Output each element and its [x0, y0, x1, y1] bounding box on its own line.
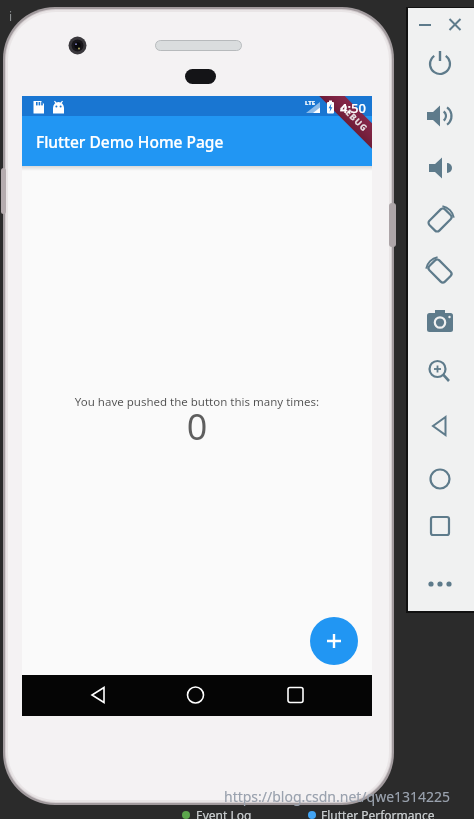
- staticText: Flutter Demo Home Page: [36, 131, 224, 152]
- staticText: https://blog.csdn.net/qwe1314225: [224, 787, 451, 806]
- staticText: i: [9, 8, 13, 24]
- staticText: You have pushed the button this many tim…: [22, 394, 372, 410]
- staticText: Flutter Performance: [321, 807, 435, 819]
- button[interactable]: [310, 617, 358, 665]
- staticText: Event Log: [196, 807, 252, 819]
- staticText: 0: [22, 402, 372, 451]
- staticText: DEBUG: [338, 102, 371, 135]
- button[interactable]: Flutter Demo Home Page: [22, 116, 372, 166]
- staticText: 4:50: [340, 99, 366, 117]
- staticText: LTE: [305, 99, 316, 107]
